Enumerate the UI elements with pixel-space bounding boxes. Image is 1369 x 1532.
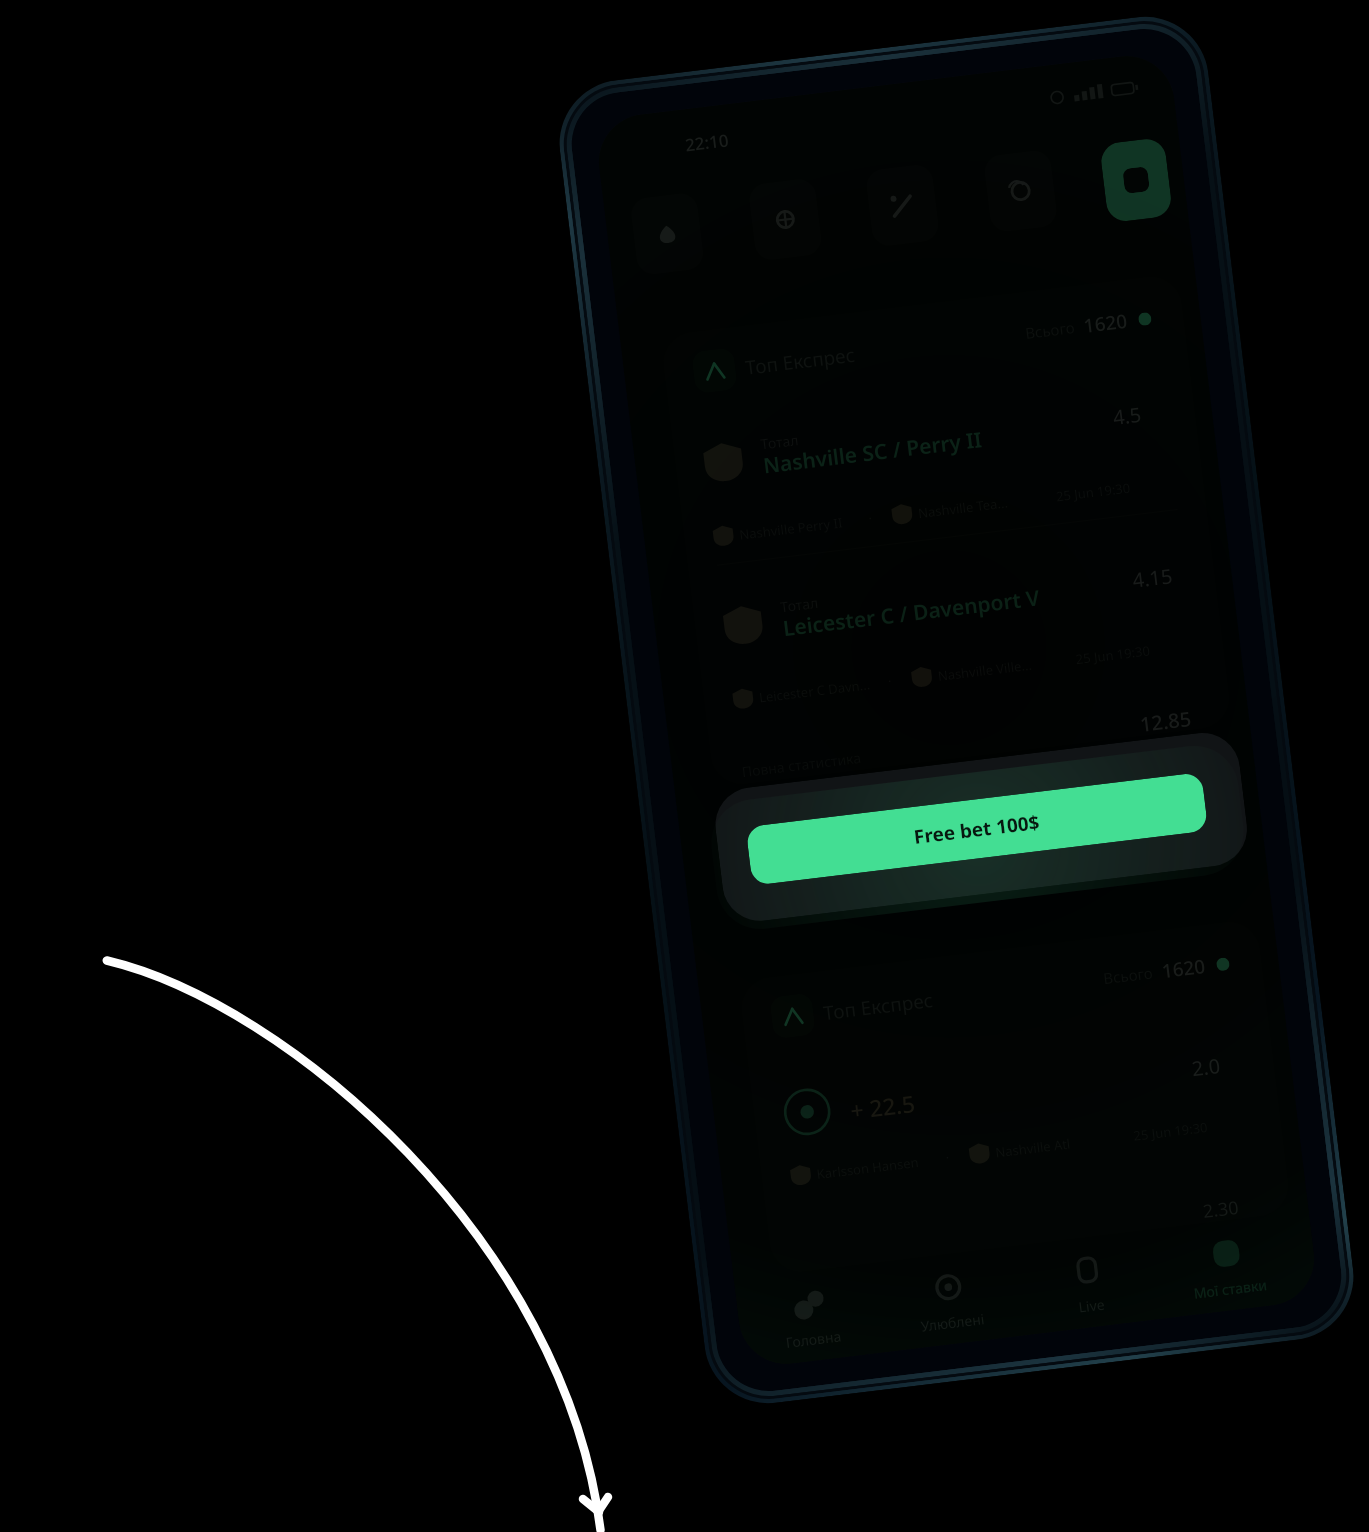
staticText: Улюблені [920, 1309, 985, 1336]
staticText: Leicester C / Davenport V [781, 583, 1042, 643]
button[interactable]: Топ Експрес [660, 273, 1233, 788]
button[interactable]: Мої ставки [1169, 1228, 1288, 1317]
staticText: 2.30 [1201, 1195, 1240, 1223]
staticText: 4.5 [1111, 401, 1143, 431]
staticText: Мої ставки [1193, 1275, 1268, 1303]
button[interactable]: Улюблені [891, 1262, 1010, 1350]
staticText: Free bet 100$ [912, 809, 1042, 850]
button[interactable]: Claim free bet 100 dollars [746, 772, 1208, 886]
staticText: 12.85 [1138, 705, 1193, 736]
button[interactable]: Basketball [747, 177, 823, 262]
staticText: 1620 [1082, 308, 1129, 339]
staticText: Повна статистика [741, 748, 862, 781]
button[interactable]: Головна [752, 1278, 871, 1367]
staticText: Головна [785, 1326, 842, 1352]
button[interactable]: All sports [1099, 137, 1173, 223]
staticText: Live [1077, 1295, 1106, 1317]
staticText: 4.15 [1131, 562, 1174, 594]
staticText: 22:10 [684, 128, 730, 156]
staticText: Топ Експрес [822, 987, 935, 1026]
button[interactable]: Live [1030, 1245, 1149, 1334]
staticText: 2.0 [1190, 1052, 1222, 1082]
staticText: 1620 [1160, 953, 1207, 984]
staticText: Топ Експрес [744, 342, 857, 381]
button[interactable]: Топ Експрес [738, 918, 1292, 1275]
button[interactable]: Volleyball [983, 149, 1058, 233]
button[interactable]: Football [629, 192, 705, 276]
staticText: + 22.5 [848, 1087, 917, 1126]
staticText: Nashville SC / Perry II [761, 425, 983, 480]
